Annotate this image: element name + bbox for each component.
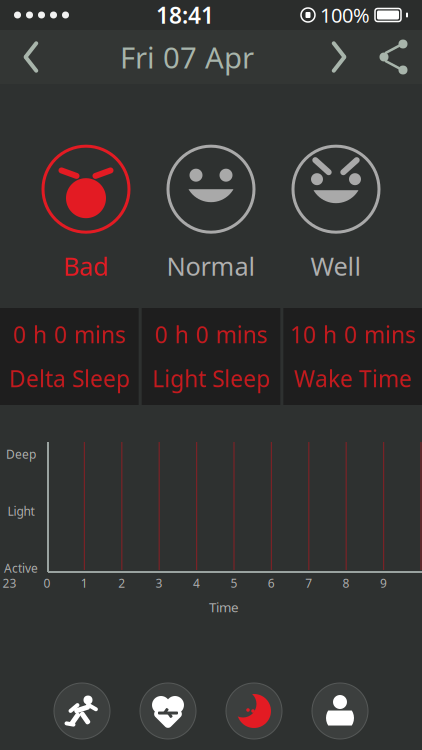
- staticText: 0: [344, 319, 357, 349]
- staticText: 0: [13, 319, 26, 349]
- staticText: Fri 07 Apr: [120, 37, 254, 76]
- button[interactable]: Previous day: [0, 30, 62, 84]
- staticText: h: [33, 319, 47, 349]
- staticText: Wake Time: [294, 363, 412, 394]
- button[interactable]: Profile: [297, 674, 383, 748]
- staticText: 100%: [320, 2, 370, 28]
- staticText: 7: [305, 575, 312, 591]
- staticText: Deep: [6, 446, 36, 462]
- staticText: 9: [380, 575, 387, 591]
- staticText: Time: [209, 598, 239, 616]
- button[interactable]: Heart rate: [125, 674, 211, 748]
- staticText: 1: [81, 575, 88, 591]
- staticText: Well: [310, 249, 361, 283]
- staticText: mins: [74, 319, 126, 349]
- staticText: mins: [215, 319, 267, 349]
- button[interactable]: Bad: [23, 138, 148, 288]
- staticText: 18:41: [156, 0, 214, 30]
- staticText: h: [174, 319, 188, 349]
- staticText: Light: [7, 503, 34, 519]
- staticText: 0: [43, 575, 50, 591]
- staticText: 8: [343, 575, 350, 591]
- button[interactable]: Sleep: [211, 674, 297, 748]
- staticText: 0: [195, 319, 208, 349]
- staticText: 4: [193, 575, 200, 591]
- staticText: 23: [2, 575, 16, 591]
- button[interactable]: Well: [273, 138, 398, 288]
- staticText: Normal: [166, 249, 255, 283]
- staticText: 3: [156, 575, 163, 591]
- staticText: 5: [230, 575, 237, 591]
- staticText: Bad: [63, 249, 109, 283]
- button[interactable]: Activity: [39, 674, 125, 748]
- button[interactable]: Normal: [148, 138, 273, 288]
- staticText: h: [323, 319, 337, 349]
- staticText: 2: [118, 575, 125, 591]
- staticText: Delta Sleep: [9, 363, 130, 394]
- staticText: 6: [268, 575, 275, 591]
- staticText: Light Sleep: [152, 363, 270, 394]
- staticText: 10: [290, 319, 316, 349]
- button[interactable]: Next day: [312, 30, 366, 84]
- staticText: 0: [154, 319, 167, 349]
- button[interactable]: Share: [366, 30, 422, 84]
- staticText: mins: [364, 319, 416, 349]
- staticText: 0: [54, 319, 67, 349]
- staticText: Active: [4, 560, 38, 576]
